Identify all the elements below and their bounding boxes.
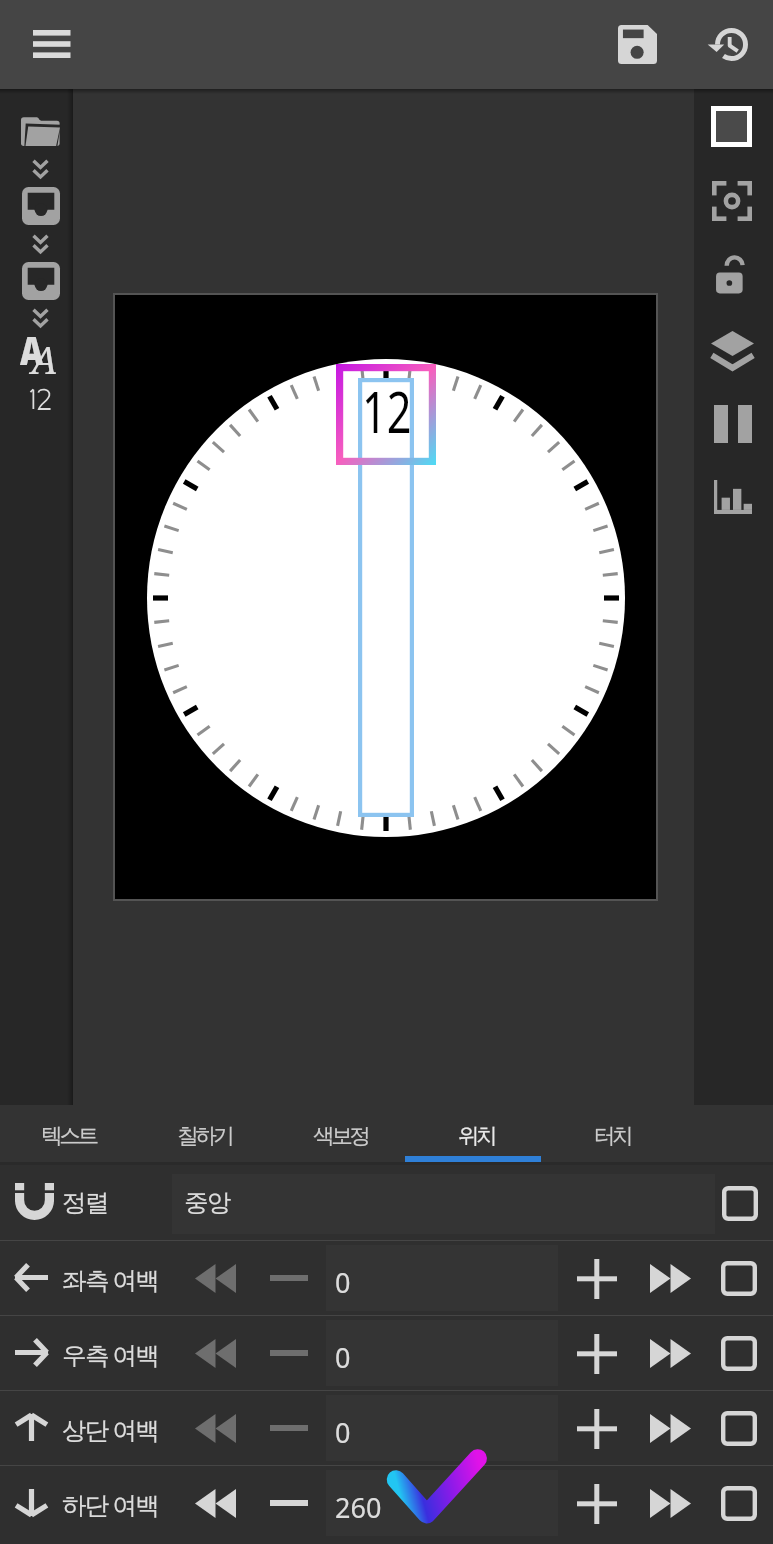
- button[interactable]: 위치: [408, 1105, 544, 1165]
- button[interactable]: Layers: [694, 313, 773, 388]
- staticText: 0: [335, 1339, 351, 1376]
- staticText: 0: [335, 1414, 351, 1451]
- staticText: 좌측 여백: [62, 1263, 159, 1296]
- button[interactable]: Save: [605, 13, 671, 77]
- button[interactable]: Shape: [694, 89, 773, 164]
- button[interactable]: 터치: [544, 1105, 680, 1165]
- button[interactable]: Decrease fast: [180, 1323, 248, 1383]
- button[interactable]: Decrease: [258, 1248, 320, 1308]
- button[interactable]: 정렬: [0, 1165, 773, 1240]
- button[interactable]: Increase: [568, 1323, 626, 1383]
- staticText: 하단 여백: [62, 1488, 159, 1521]
- button[interactable]: Increase fast: [642, 1398, 700, 1458]
- button[interactable]: Decrease: [258, 1473, 320, 1533]
- button[interactable]: Import image: [0, 183, 73, 229]
- button[interactable]: Increase fast: [642, 1248, 700, 1308]
- staticText: 터치: [594, 1122, 631, 1149]
- button[interactable]: Increase: [568, 1398, 626, 1458]
- button[interactable]: 텍스트: [0, 1105, 136, 1165]
- button[interactable]: Lock: [694, 239, 773, 314]
- button[interactable]: Open project: [0, 112, 73, 150]
- staticText: 중앙: [184, 1187, 230, 1218]
- button[interactable]: Increase fast: [642, 1323, 700, 1383]
- staticText: 우측 여백: [62, 1338, 159, 1371]
- staticText: 텍스트: [41, 1122, 96, 1149]
- staticText: 12: [362, 372, 412, 450]
- button[interactable]: 칠하기: [136, 1105, 272, 1165]
- button[interactable]: Menu: [19, 16, 85, 74]
- button[interactable]: Decrease fast: [180, 1248, 248, 1308]
- button[interactable]: 색보정: [272, 1105, 408, 1165]
- button[interactable]: Increase: [568, 1248, 626, 1308]
- button[interactable]: Toggle: [709, 1398, 769, 1458]
- button[interactable]: Toggle: [709, 1248, 769, 1308]
- button[interactable]: Toggle: [709, 1473, 769, 1533]
- button[interactable]: Increase: [568, 1473, 626, 1533]
- staticText: 0: [335, 1264, 351, 1301]
- button[interactable]: Center: [694, 164, 773, 239]
- button[interactable]: Pause: [694, 386, 773, 461]
- staticText: 칠하기: [177, 1122, 232, 1149]
- button[interactable]: Toggle: [709, 1323, 769, 1383]
- staticText: 정렬: [62, 1187, 108, 1218]
- staticText: A: [31, 333, 58, 385]
- button[interactable]: History: [693, 13, 759, 77]
- button[interactable]: Statistics: [694, 460, 773, 535]
- staticText: 상단 여백: [62, 1413, 159, 1446]
- button[interactable]: Increase fast: [642, 1473, 700, 1533]
- staticText: 260: [335, 1489, 382, 1526]
- button[interactable]: Decrease fast: [180, 1398, 248, 1458]
- button[interactable]: Decrease: [258, 1323, 320, 1383]
- button[interactable]: Export image: [0, 258, 73, 304]
- staticText: 위치: [458, 1122, 495, 1149]
- button[interactable]: Decrease fast: [180, 1473, 248, 1533]
- button[interactable]: Fonts: [0, 329, 73, 413]
- button[interactable]: Toggle align: [705, 1173, 765, 1233]
- staticText: 색보정: [313, 1122, 368, 1149]
- staticText: A: [20, 323, 44, 376]
- button[interactable]: Decrease: [258, 1398, 320, 1458]
